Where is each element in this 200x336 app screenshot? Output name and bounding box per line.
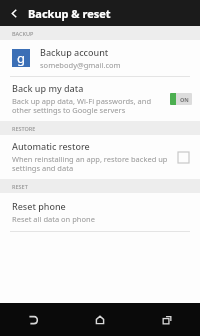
button[interactable]: Back [0, 303, 66, 336]
button[interactable]: Automatic restore checkbox, unchecked [174, 148, 192, 166]
staticText: BACKUP [12, 30, 34, 37]
staticText: RESTORE [12, 125, 36, 132]
button[interactable]: g [0, 40, 200, 76]
staticText: Automatic restore [12, 140, 90, 152]
staticText: Reset phone [12, 200, 66, 212]
staticText: Back up app data, Wi-Fi passwords, and o… [12, 96, 164, 116]
staticText: somebody@gmail.com [40, 60, 121, 70]
button[interactable]: Back [0, 0, 28, 26]
button[interactable]: Back up my data toggle, on [168, 91, 194, 107]
staticText: Backup & reset [28, 6, 111, 21]
button[interactable]: Automatic restore [0, 135, 200, 179]
staticText: g [17, 49, 25, 67]
staticText: Back up my data [12, 82, 84, 94]
button[interactable]: Recent apps [133, 303, 200, 336]
button[interactable]: Back up my data [0, 77, 200, 121]
staticText: When reinstalling an app, restore backed… [12, 154, 170, 174]
staticText: Reset all data on phone [12, 214, 95, 224]
staticText: RESET [12, 183, 28, 190]
staticText: ON [180, 96, 189, 103]
button[interactable]: Reset phone [0, 193, 200, 231]
button[interactable]: Home [66, 303, 133, 336]
staticText: Backup account [40, 46, 109, 58]
